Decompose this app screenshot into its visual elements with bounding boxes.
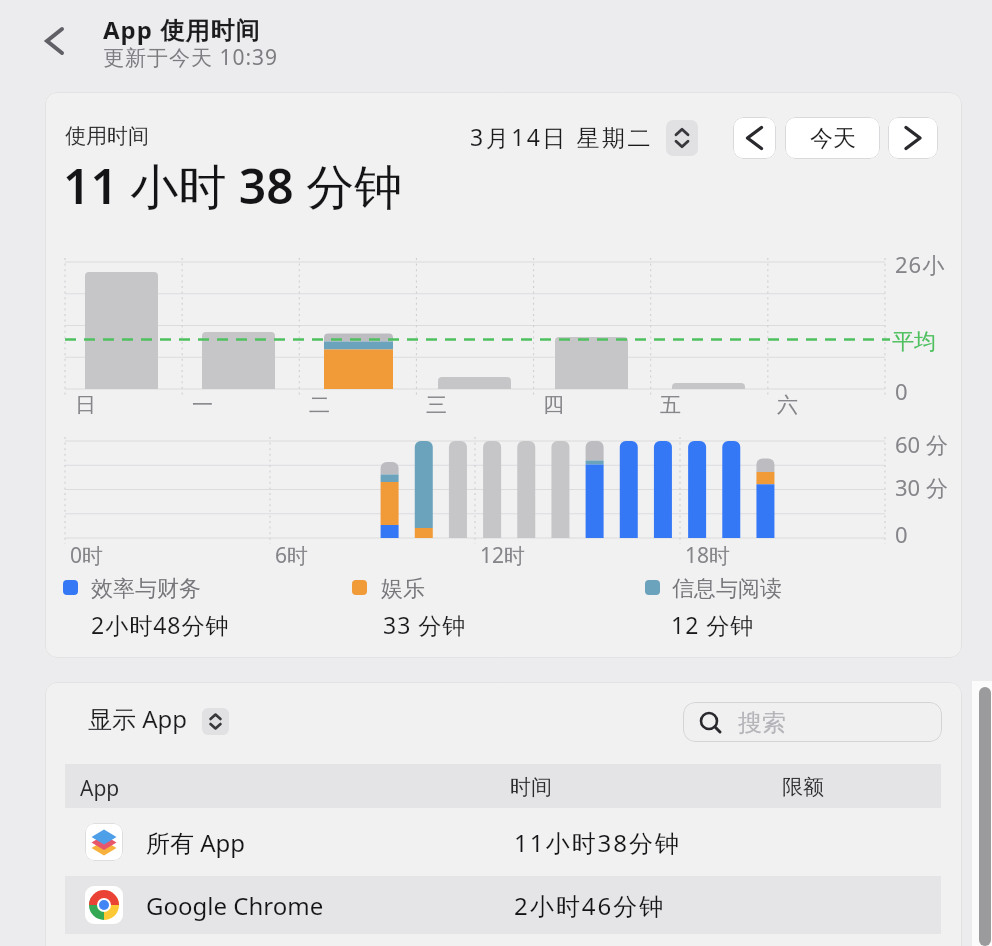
staticText: 所有 App	[146, 826, 246, 859]
staticText: 四	[543, 392, 564, 418]
staticText: 效率与财务	[91, 575, 201, 603]
button[interactable]	[44, 22, 74, 58]
staticText: 11 小时 38 分钟	[63, 153, 403, 219]
staticText: 搜索	[738, 708, 786, 738]
staticText: 使用时间	[65, 123, 149, 149]
staticText: 娱乐	[381, 575, 425, 603]
staticText: 二	[309, 392, 330, 418]
staticText: 五	[660, 392, 681, 418]
staticText: 平均	[892, 328, 936, 356]
staticText: 0时	[70, 541, 104, 570]
staticText: 3月14日 星期二	[470, 121, 653, 152]
staticText: 30 分	[895, 472, 948, 502]
staticText: 12 分钟	[671, 609, 755, 640]
staticText: 信息与阅读	[672, 575, 782, 603]
staticText: Google Chrome	[146, 889, 324, 922]
staticText: 6时	[275, 541, 309, 570]
staticText: 0	[895, 376, 908, 406]
button[interactable]	[733, 117, 776, 159]
staticText: 今天	[810, 124, 856, 153]
staticText: 33 分钟	[383, 609, 467, 640]
button[interactable]: Google Chrome	[65, 876, 941, 934]
staticText: 18时	[685, 541, 731, 570]
staticText: 26小	[895, 249, 946, 279]
staticText: App 使用时间	[103, 13, 261, 46]
button[interactable]: 搜索	[683, 702, 942, 742]
staticText: 11小时38分钟	[514, 826, 681, 859]
staticText: 一	[192, 392, 213, 418]
button[interactable]	[666, 120, 698, 156]
staticText: 显示 App	[88, 702, 188, 735]
staticText: 60 分	[895, 429, 948, 459]
staticText: 六	[777, 392, 798, 418]
button[interactable]: 今天	[785, 117, 880, 159]
staticText: 12时	[480, 541, 526, 570]
staticText: 时间	[510, 774, 552, 800]
staticText: 日	[75, 392, 96, 418]
button[interactable]: 所有 App	[65, 808, 941, 876]
staticText: 限额	[782, 774, 824, 800]
staticText: 三	[426, 392, 447, 418]
staticText: App	[80, 774, 120, 803]
staticText: 2小时48分钟	[91, 609, 230, 640]
staticText: 0	[895, 519, 908, 549]
button[interactable]	[202, 708, 229, 735]
button[interactable]	[888, 117, 938, 159]
staticText: 2小时46分钟	[514, 889, 666, 922]
staticText: 更新于今天 10:39	[103, 43, 279, 72]
